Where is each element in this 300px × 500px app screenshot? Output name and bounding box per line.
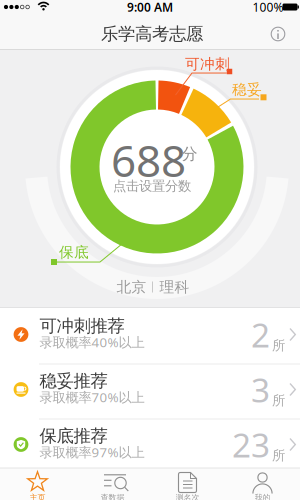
staticText: 100%: [252, 0, 283, 15]
staticText: 23: [232, 422, 270, 467]
staticText: 保底推荐: [39, 425, 107, 447]
staticText: 分: [181, 144, 197, 164]
staticText: 所: [272, 337, 285, 354]
staticText: 保底: [59, 243, 89, 261]
staticText: 北京: [116, 278, 146, 296]
staticText: 理科: [159, 278, 189, 296]
staticText: 稳妥: [232, 80, 262, 98]
staticText: 测名次: [175, 493, 199, 500]
staticText: 9:00 AM: [127, 0, 173, 15]
staticText: 录取概率97%以上: [39, 443, 144, 461]
staticText: 查数据: [100, 493, 124, 500]
staticText: 稳妥推荐: [39, 370, 107, 392]
staticText: 主页: [29, 493, 45, 500]
staticText: 可冲刺: [185, 55, 230, 73]
staticText: 3: [251, 367, 270, 412]
staticText: 可冲刺推荐: [39, 315, 124, 337]
staticText: 我的: [254, 493, 270, 500]
staticText: 2: [251, 312, 270, 357]
staticText: 所: [272, 447, 285, 464]
staticText: 688: [111, 131, 186, 189]
staticText: 录取概率70%以上: [39, 388, 144, 406]
staticText: 录取概率40%以上: [39, 333, 144, 351]
staticText: 所: [272, 392, 285, 409]
staticText: 乐学高考志愿: [101, 23, 203, 45]
staticText: 点击设置分数: [113, 178, 191, 194]
